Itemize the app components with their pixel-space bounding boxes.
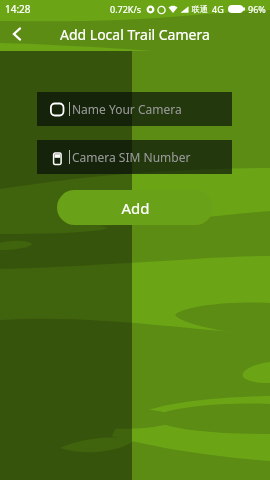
staticText: 96% xyxy=(248,3,266,15)
staticText: Name Your Camera xyxy=(72,101,182,117)
staticText: Camera SIM Number xyxy=(72,149,191,165)
staticText: 0.72K/s xyxy=(110,3,142,15)
staticText: 4G xyxy=(212,3,224,15)
button[interactable]: Camera SIM Number xyxy=(37,140,232,174)
staticText: Add Local Trail Camera xyxy=(60,25,210,44)
staticText: 联通 xyxy=(192,4,208,14)
button[interactable]: Back xyxy=(0,17,34,51)
staticText: Add xyxy=(121,198,150,218)
button[interactable]: Add xyxy=(57,190,213,225)
button[interactable]: Name Your Camera xyxy=(37,92,232,126)
staticText: 14:28 xyxy=(5,2,31,16)
